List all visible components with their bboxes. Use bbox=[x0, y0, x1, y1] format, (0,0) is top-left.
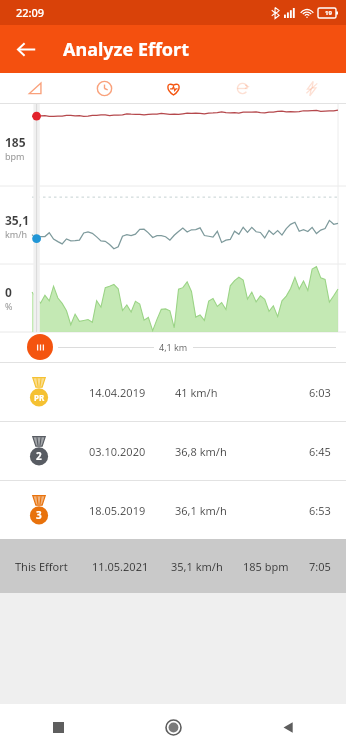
staticText: 2 bbox=[36, 449, 42, 463]
button[interactable]: PR bbox=[0, 363, 346, 421]
staticText: Analyze Effort bbox=[63, 37, 189, 62]
staticText: 4,1 km bbox=[159, 341, 188, 353]
staticText: 14.04.2019 bbox=[89, 385, 146, 400]
button[interactable]: Back bbox=[6, 29, 46, 69]
staticText: 6:03 bbox=[309, 385, 331, 400]
button[interactable]: Back bbox=[231, 704, 346, 750]
staticText: 35,1 km/h bbox=[171, 559, 223, 574]
staticText: 22:09 bbox=[16, 5, 45, 20]
staticText: 41 km/h bbox=[175, 385, 218, 400]
button[interactable]: This Effort bbox=[0, 539, 346, 593]
staticText: 18.05.2019 bbox=[89, 503, 146, 518]
staticText: 36,1 km/h bbox=[175, 503, 227, 518]
staticText: 6:45 bbox=[309, 444, 331, 459]
button[interactable]: 2 bbox=[0, 422, 346, 480]
button[interactable]: Cadence bbox=[208, 73, 277, 104]
staticText: km/h bbox=[5, 228, 28, 240]
staticText: 11.05.2021 bbox=[92, 559, 149, 574]
staticText: 7:05 bbox=[309, 559, 331, 574]
button[interactable]: Home bbox=[116, 704, 231, 750]
staticText: % bbox=[5, 300, 13, 312]
button[interactable]: Scrub position bbox=[27, 334, 53, 360]
button[interactable]: Gradient bbox=[0, 73, 70, 104]
button[interactable]: Recent apps bbox=[0, 704, 116, 750]
staticText: bpm bbox=[5, 150, 25, 162]
button[interactable]: Power bbox=[277, 73, 346, 104]
staticText: 35,1 bbox=[5, 212, 30, 228]
staticText: This Effort bbox=[15, 559, 68, 574]
button[interactable]: 3 bbox=[0, 481, 346, 539]
button[interactable]: Time bbox=[70, 73, 139, 104]
staticText: 03.10.2020 bbox=[89, 444, 146, 459]
staticText: 36,8 km/h bbox=[175, 444, 227, 459]
staticText: PR bbox=[34, 392, 45, 403]
staticText: 19 bbox=[325, 9, 332, 17]
button[interactable]: Heart rate bbox=[139, 73, 208, 104]
staticText: 0 bbox=[5, 284, 12, 300]
staticText: 185 bpm bbox=[243, 559, 289, 574]
staticText: 185 bbox=[5, 134, 26, 150]
staticText: 3 bbox=[36, 508, 42, 522]
staticText: 6:53 bbox=[309, 503, 331, 518]
